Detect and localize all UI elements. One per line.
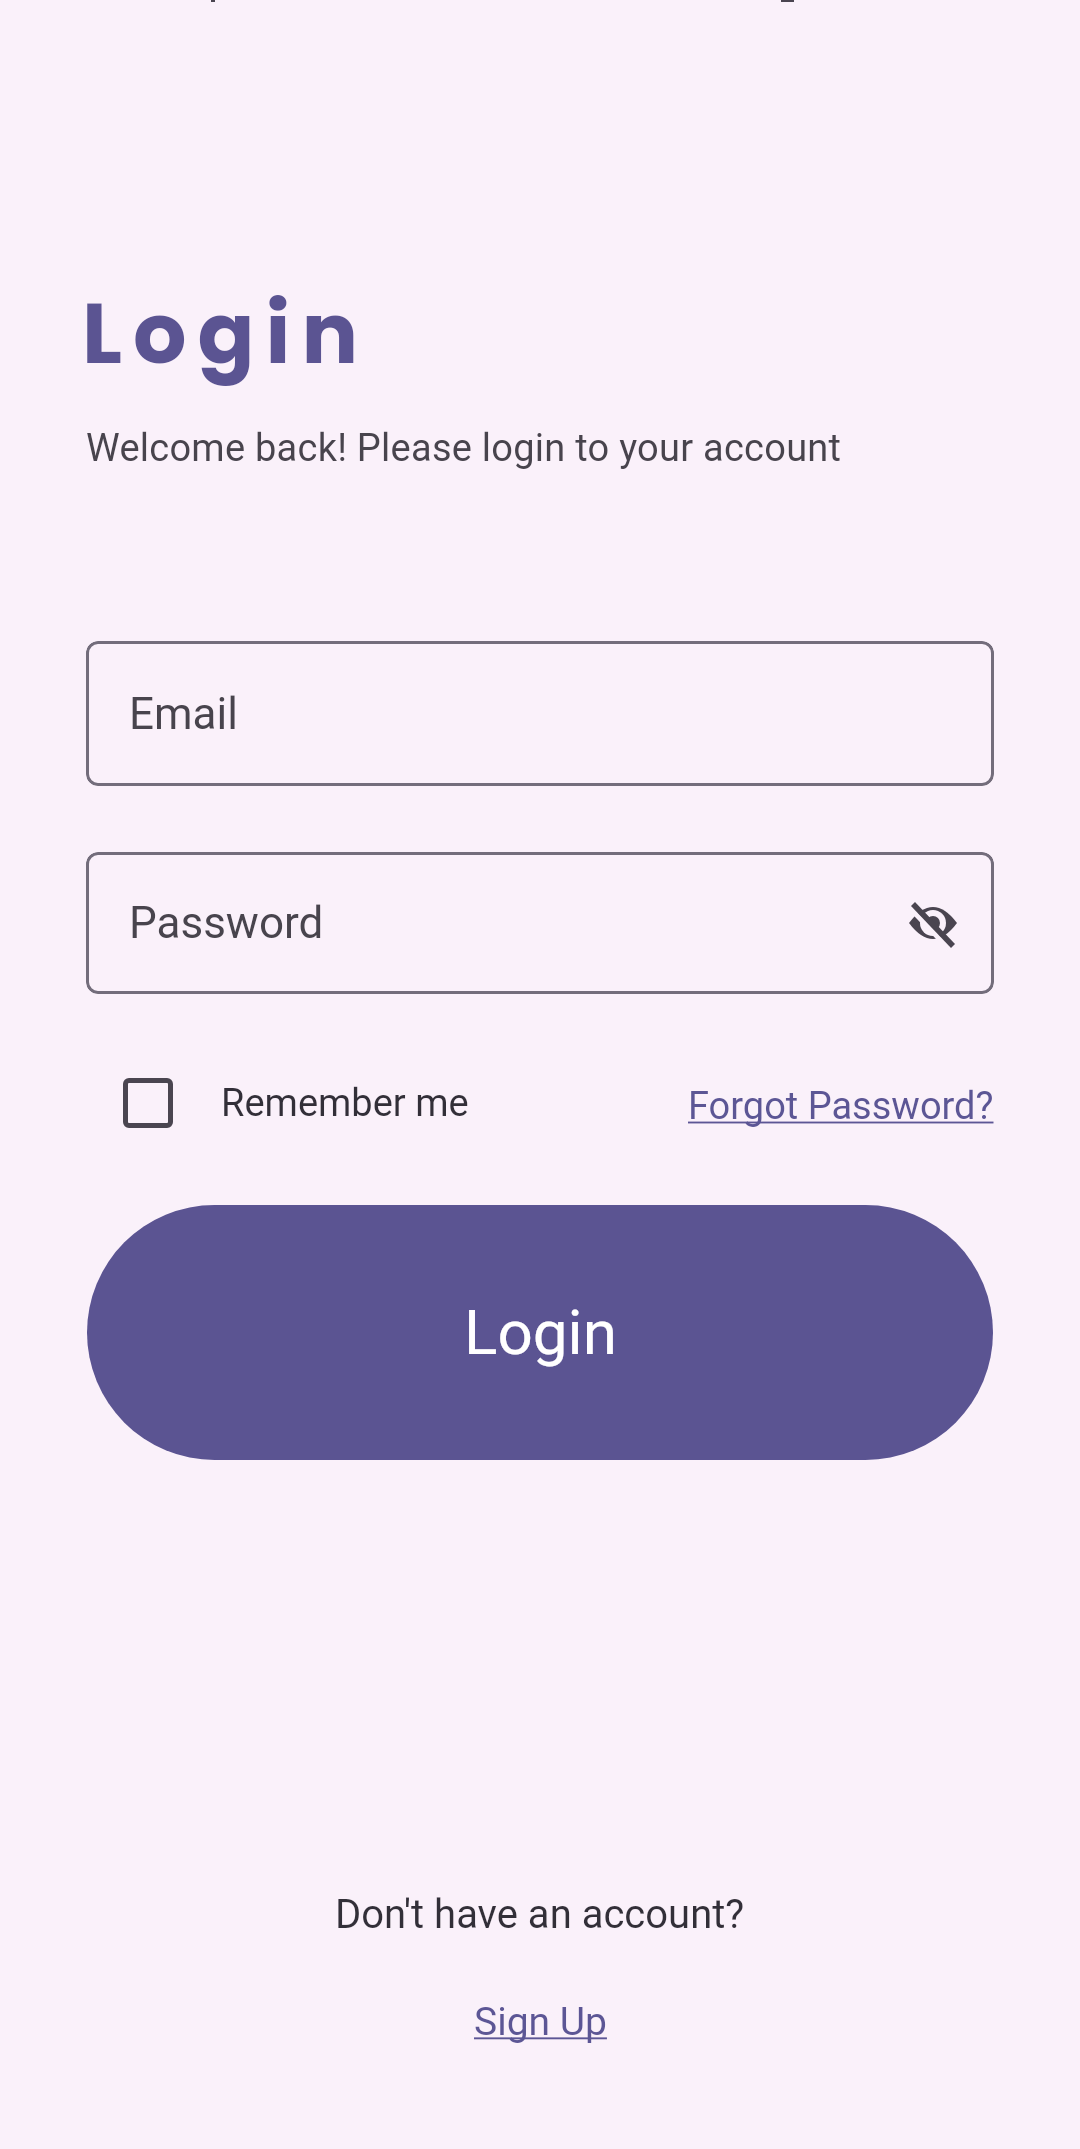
staticText: Welcome back! Please login to your accou…: [86, 426, 842, 471]
staticText: Login: [464, 1296, 617, 1369]
button[interactable]: Login: [87, 1205, 993, 1460]
staticText: Email: [129, 688, 238, 740]
button[interactable]: [123, 1078, 173, 1128]
button[interactable]: Sign Up: [474, 1999, 607, 2045]
button[interactable]: Forgot Password?: [688, 1084, 994, 1129]
staticText: Password: [129, 897, 324, 949]
button[interactable]: [905, 895, 961, 951]
button[interactable]: Remember me: [221, 1081, 469, 1126]
button[interactable]: Email: [86, 641, 994, 786]
staticText: Don't have an account?: [335, 1891, 745, 1938]
button[interactable]: Password: [86, 852, 994, 994]
staticText: Login: [82, 275, 370, 393]
